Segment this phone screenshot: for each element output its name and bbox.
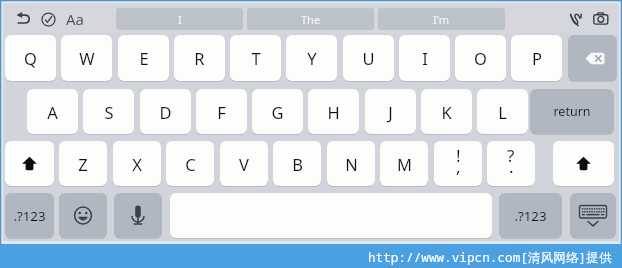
button[interactable]: Q bbox=[5, 35, 56, 81]
button[interactable]: Shift bbox=[553, 141, 614, 186]
staticText: .?123 bbox=[514, 207, 547, 225]
button[interactable]: I bbox=[116, 8, 243, 30]
button[interactable]: U bbox=[343, 35, 394, 81]
button[interactable]: G bbox=[252, 89, 303, 134]
staticText: J bbox=[388, 101, 393, 123]
button[interactable]: I bbox=[399, 35, 450, 81]
button[interactable]: P bbox=[511, 35, 562, 81]
button[interactable]: E bbox=[118, 35, 169, 81]
staticText: K bbox=[441, 101, 452, 123]
staticText: V bbox=[239, 153, 249, 175]
staticText: R bbox=[194, 47, 205, 69]
button[interactable]: ? bbox=[487, 141, 535, 186]
button[interactable]: Handwriting bbox=[570, 13, 584, 26]
staticText: U bbox=[362, 47, 375, 69]
staticText: D bbox=[159, 101, 172, 123]
button[interactable]: M bbox=[380, 141, 428, 186]
staticText: H bbox=[327, 101, 340, 123]
button[interactable]: B bbox=[273, 141, 321, 186]
staticText: L bbox=[498, 101, 507, 123]
staticText: P bbox=[532, 47, 542, 69]
button[interactable]: Undo bbox=[17, 13, 31, 25]
staticText: N bbox=[345, 153, 358, 175]
button[interactable]: Backspace bbox=[568, 35, 617, 81]
button[interactable]: O bbox=[455, 35, 506, 81]
button[interactable]: Voice input bbox=[114, 193, 162, 238]
staticText: Y bbox=[307, 47, 317, 69]
button[interactable]: T bbox=[230, 35, 281, 81]
button[interactable]: Z bbox=[59, 141, 107, 186]
button[interactable]: Emoji bbox=[59, 193, 107, 238]
staticText: G bbox=[271, 101, 284, 123]
button[interactable]: Camera bbox=[593, 12, 609, 25]
staticText: E bbox=[139, 47, 149, 69]
button[interactable]: D bbox=[140, 89, 191, 134]
staticText: http://www.vipcn.com[清风网络]提供 bbox=[368, 248, 612, 265]
button[interactable]: V bbox=[220, 141, 268, 186]
staticText: I'm bbox=[433, 12, 450, 27]
staticText: O bbox=[474, 47, 487, 69]
button[interactable]: Shift bbox=[5, 141, 54, 186]
button[interactable]: .?123 bbox=[499, 193, 562, 238]
button[interactable]: H bbox=[308, 89, 359, 134]
staticText: M bbox=[397, 153, 412, 175]
staticText: W bbox=[79, 47, 95, 69]
staticText: F bbox=[217, 101, 226, 123]
staticText: A bbox=[47, 101, 58, 123]
staticText: ? bbox=[507, 144, 515, 167]
staticText: I bbox=[422, 47, 428, 69]
button[interactable]: X bbox=[113, 141, 161, 186]
staticText: , bbox=[456, 155, 461, 178]
button[interactable]: J bbox=[365, 89, 416, 134]
button[interactable]: F bbox=[196, 89, 247, 134]
button[interactable]: .?123 bbox=[5, 193, 54, 238]
staticText: . bbox=[509, 155, 514, 178]
button[interactable]: C bbox=[166, 141, 214, 186]
button[interactable]: R bbox=[174, 35, 225, 81]
staticText: B bbox=[292, 153, 303, 175]
staticText: Q bbox=[24, 47, 37, 69]
staticText: return bbox=[553, 103, 591, 120]
button[interactable]: Hide keyboard bbox=[570, 193, 616, 238]
button[interactable]: Aa bbox=[64, 8, 86, 30]
staticText: T bbox=[251, 47, 261, 69]
button[interactable]: S bbox=[83, 89, 134, 134]
button[interactable]: The bbox=[247, 8, 374, 30]
button[interactable]: return bbox=[530, 89, 614, 134]
staticText: C bbox=[185, 153, 196, 175]
button[interactable]: A bbox=[27, 89, 78, 134]
staticText: Z bbox=[78, 153, 88, 175]
staticText: .?123 bbox=[13, 207, 46, 225]
button[interactable]: I'm bbox=[378, 8, 505, 30]
staticText: The bbox=[301, 12, 321, 27]
button[interactable]: W bbox=[61, 35, 112, 81]
button[interactable]: Y bbox=[286, 35, 337, 81]
button[interactable]: ! bbox=[434, 141, 482, 186]
staticText: X bbox=[132, 153, 142, 175]
staticText: I bbox=[178, 12, 182, 27]
staticText: ! bbox=[456, 144, 461, 167]
button[interactable]: N bbox=[327, 141, 375, 186]
button[interactable]: K bbox=[421, 89, 472, 134]
staticText: Aa bbox=[66, 9, 85, 29]
button[interactable]: Confirm bbox=[41, 12, 56, 27]
button[interactable]: L bbox=[477, 89, 528, 134]
staticText: S bbox=[104, 101, 114, 123]
